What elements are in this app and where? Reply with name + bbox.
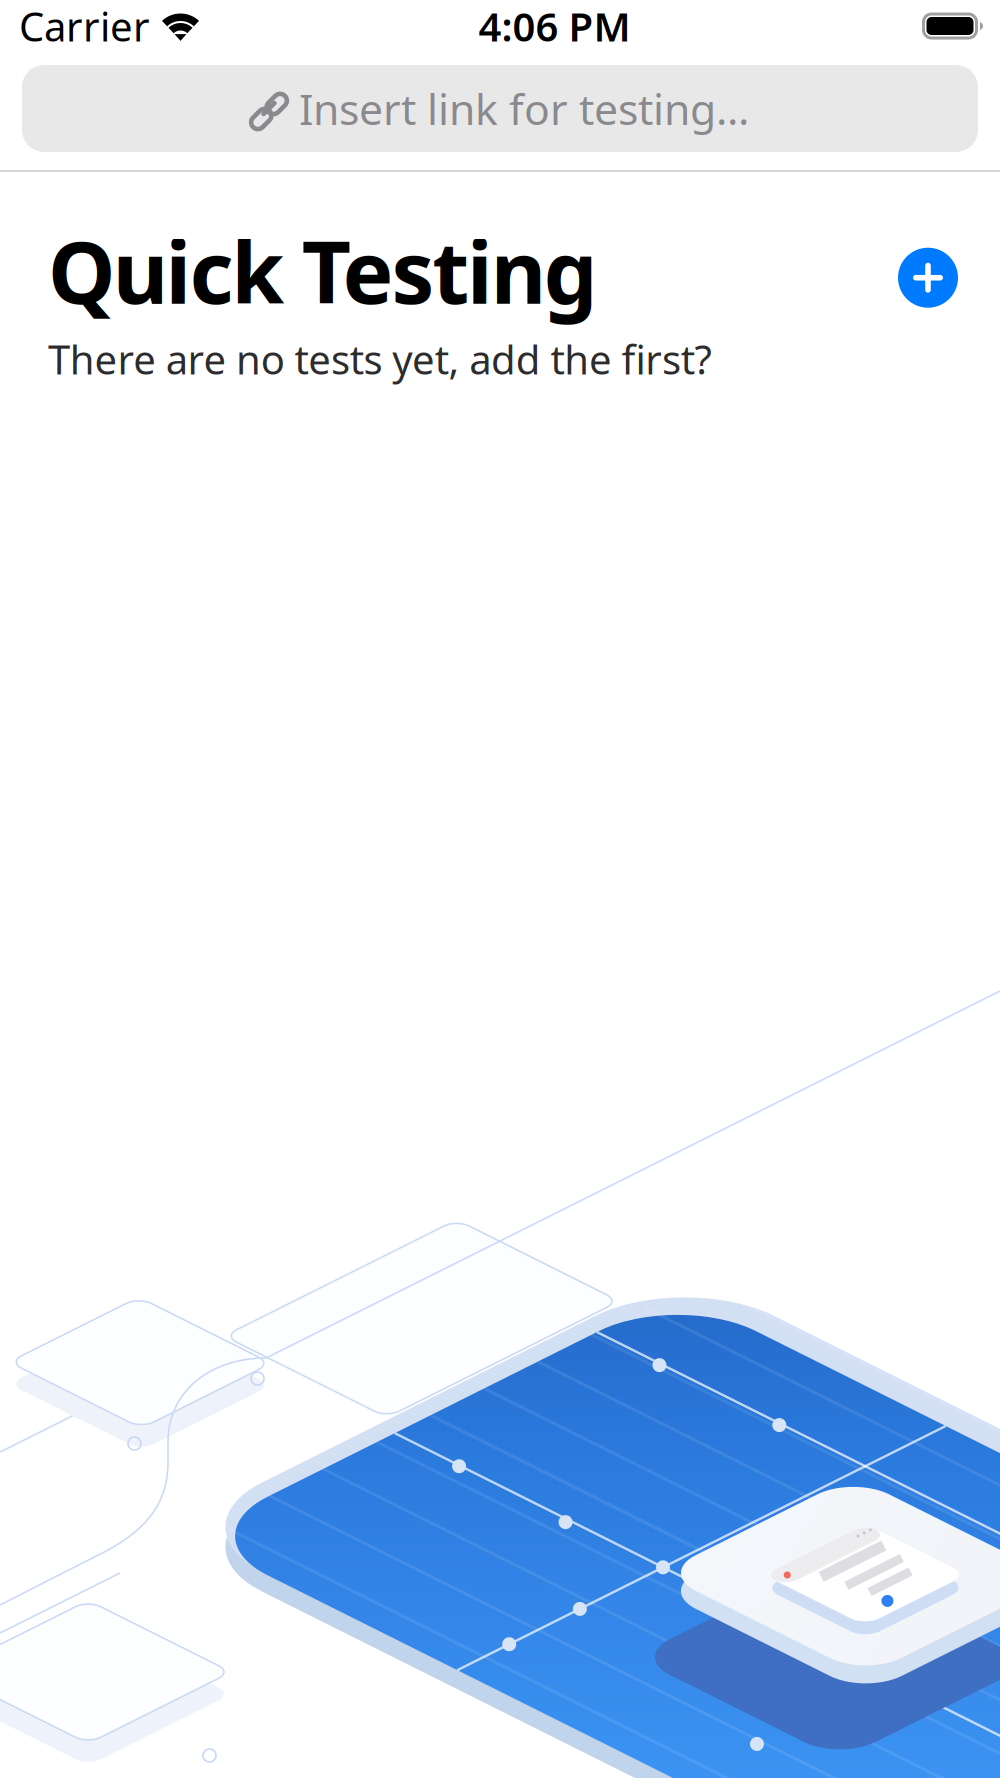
staticText: Insert link for testing...: [299, 80, 749, 137]
staticText: Quick Testing: [48, 214, 598, 327]
staticText: 4:06 PM: [478, 0, 630, 52]
staticText: Carrier: [19, 0, 150, 52]
staticText: There are no tests yet, add the first?: [48, 332, 712, 385]
button[interactable]: Add test: [898, 248, 958, 308]
button[interactable]: Insert link for testing...: [22, 65, 978, 152]
